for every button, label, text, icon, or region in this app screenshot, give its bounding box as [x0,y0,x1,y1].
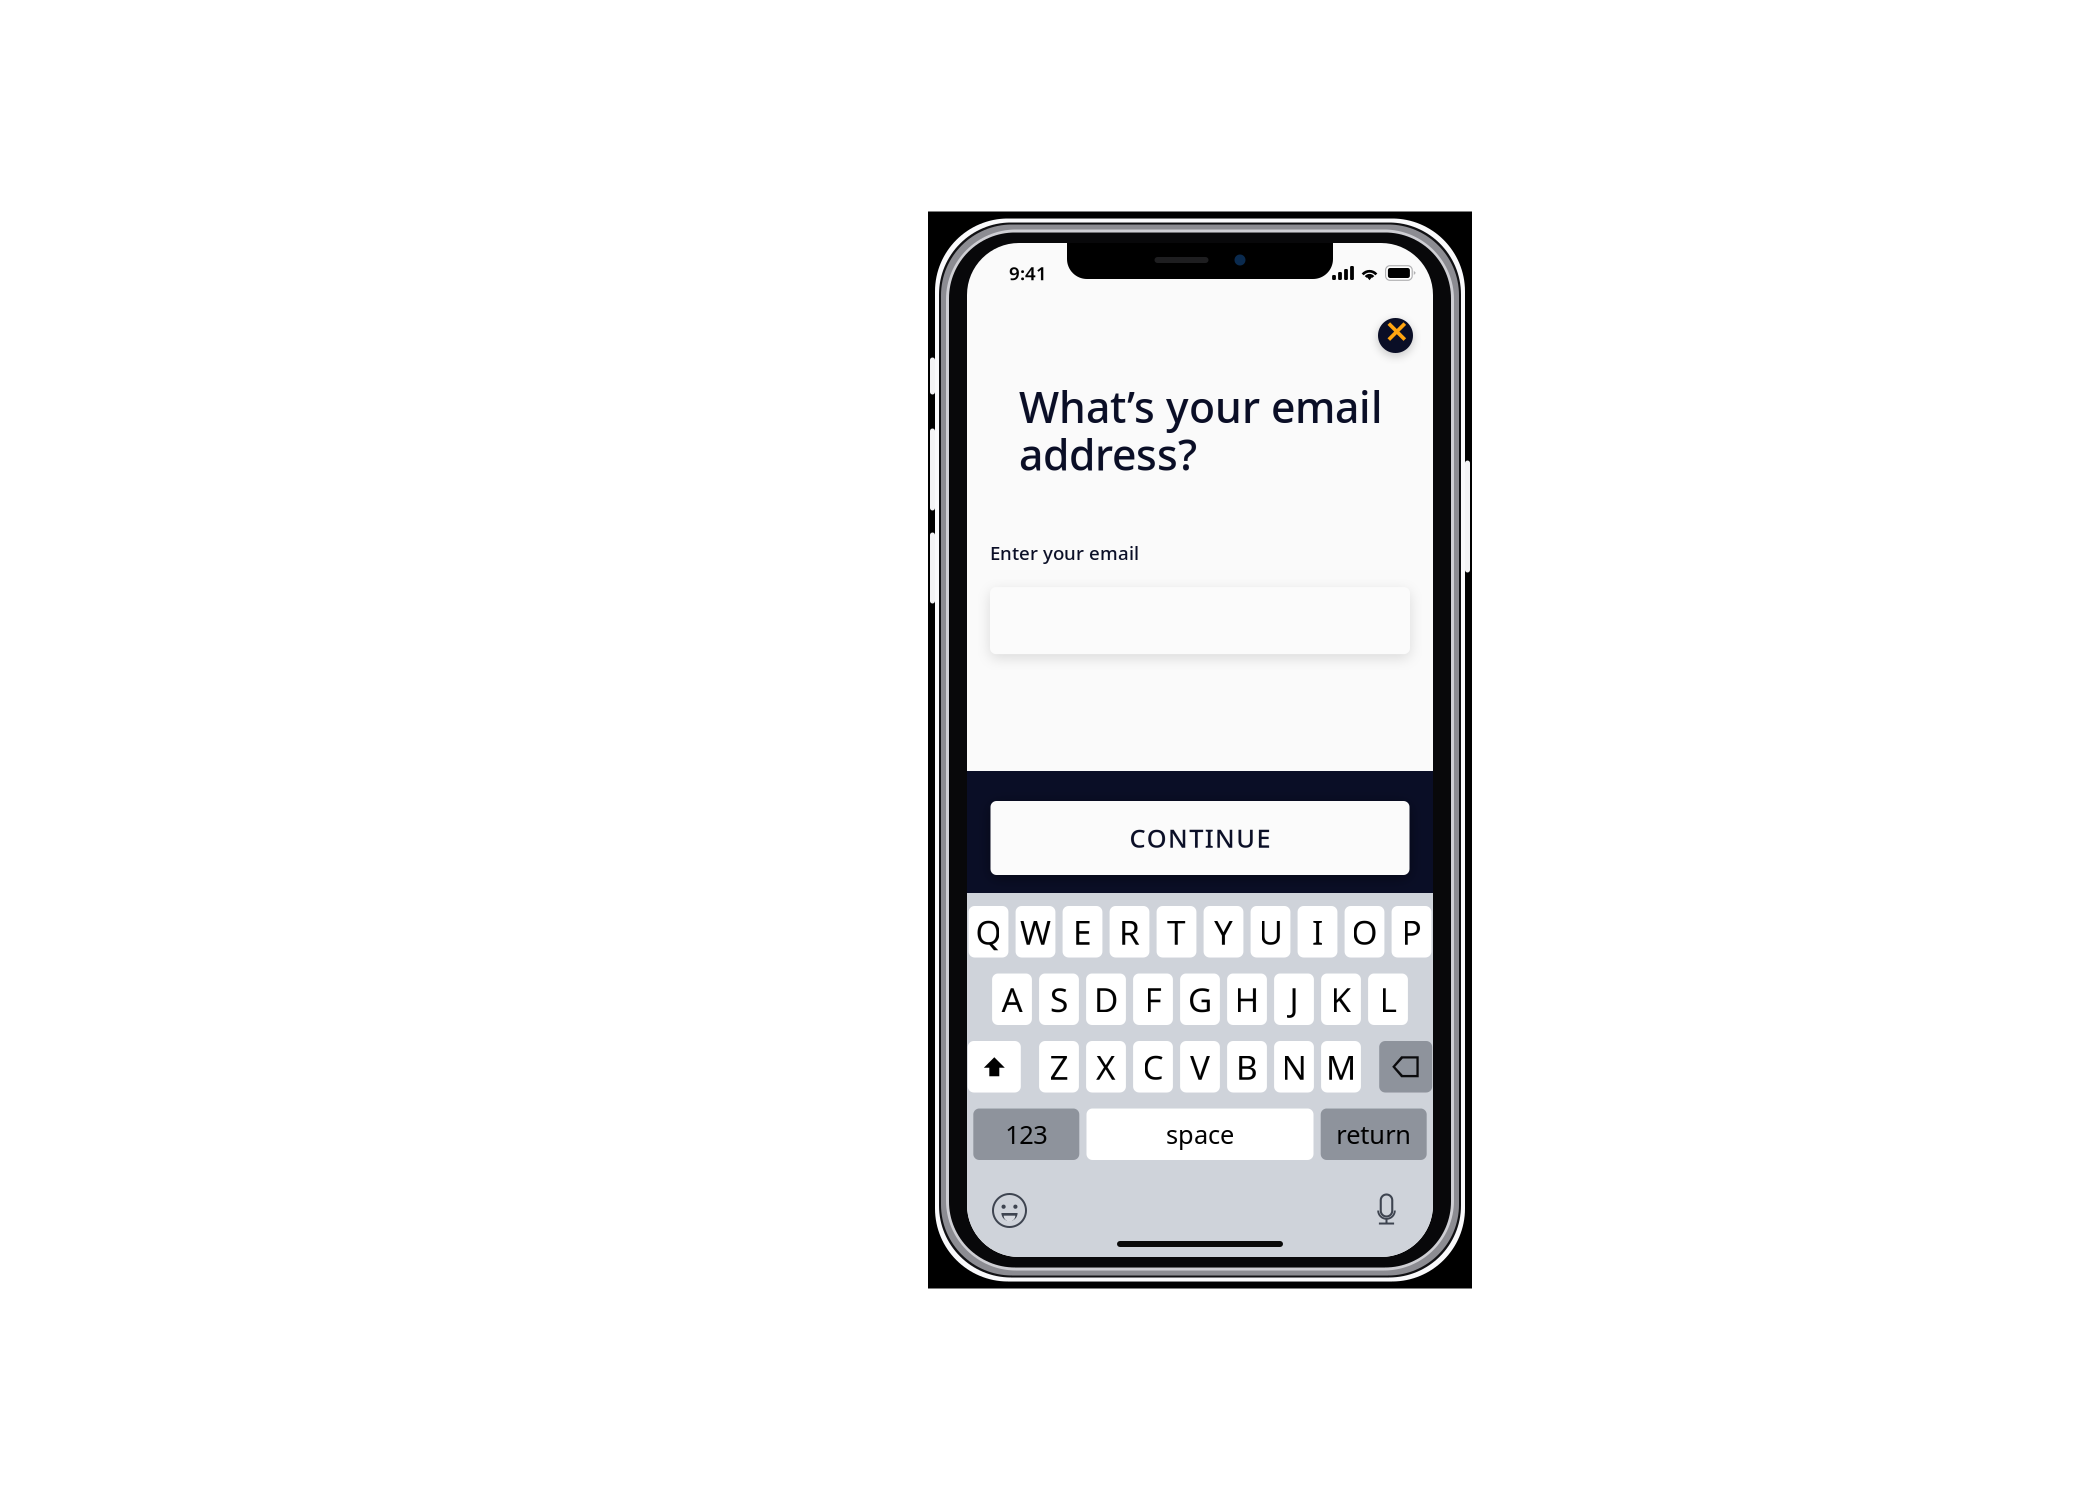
button[interactable]: F [1133,973,1173,1025]
button[interactable]: C [1133,1041,1173,1092]
button[interactable]: Q [969,906,1008,957]
staticText: X [1096,1045,1116,1089]
staticText: R [1119,910,1140,954]
button[interactable]: Dictation [1376,1193,1397,1227]
staticText: M [1326,1045,1356,1089]
button[interactable]: W [1016,906,1055,957]
button[interactable]: Shift [968,1041,1021,1092]
button[interactable]: U [1251,906,1290,957]
staticText: C [1142,1045,1163,1089]
button[interactable]: return [1321,1108,1427,1160]
button[interactable]: E [1063,906,1102,957]
button[interactable]: 123 [973,1108,1079,1160]
button[interactable]: S [1039,973,1079,1025]
button[interactable]: M [1321,1041,1361,1092]
staticText: D [1094,977,1118,1021]
button[interactable]: R [1110,906,1149,957]
staticText: Y [1214,910,1233,954]
staticText: G [1188,977,1212,1021]
staticText: S [1050,977,1068,1021]
staticText: O [1351,910,1377,954]
button[interactable]: Close [1378,318,1413,353]
button[interactable]: N [1274,1041,1314,1092]
button[interactable]: Delete [1379,1041,1432,1092]
staticText: W [1020,910,1051,954]
staticText: Q [975,910,1001,954]
staticText: F [1144,977,1161,1021]
staticText: H [1234,977,1259,1021]
staticText: address? [1019,426,1197,482]
button[interactable]: B [1227,1041,1267,1092]
staticText: space [1166,1117,1234,1151]
button[interactable]: space [1086,1108,1313,1160]
button[interactable]: Y [1204,906,1243,957]
staticText: T [1167,910,1186,954]
button[interactable]: O [1345,906,1384,957]
button[interactable]: J [1274,973,1314,1025]
button[interactable]: Emoji [992,1193,1027,1228]
staticText: L [1379,977,1396,1021]
button[interactable]: Z [1039,1041,1079,1092]
staticText: CONTINUE [1129,821,1271,855]
staticText: U [1258,910,1282,954]
button[interactable]: A [992,973,1032,1025]
button[interactable]: H [1227,973,1267,1025]
staticText: What’s your email [1019,378,1383,435]
staticText: K [1330,977,1351,1021]
button[interactable]: D [1086,973,1126,1025]
button[interactable]: K [1321,973,1361,1025]
staticText: I [1312,910,1323,954]
button[interactable]: V [1180,1041,1220,1092]
button[interactable]: L [1368,973,1408,1025]
button[interactable]: G [1180,973,1220,1025]
button[interactable]: I [1298,906,1337,957]
staticText: return [1336,1117,1411,1151]
staticText: P [1401,910,1421,954]
staticText: Z [1049,1045,1068,1089]
button[interactable]: X [1086,1041,1126,1092]
button[interactable]: CONTINUE [990,771,1409,893]
button[interactable]: P [1392,906,1431,957]
staticText: J [1289,977,1298,1021]
button[interactable]: T [1157,906,1196,957]
staticText: 123 [1005,1117,1047,1151]
staticText: E [1073,910,1092,954]
staticText: Enter your email [990,540,1139,565]
staticText: A [1001,977,1022,1021]
staticText: V [1190,1045,1210,1089]
staticText: 9:41 [1009,261,1047,285]
staticText: N [1281,1045,1306,1089]
staticText: B [1236,1045,1258,1089]
